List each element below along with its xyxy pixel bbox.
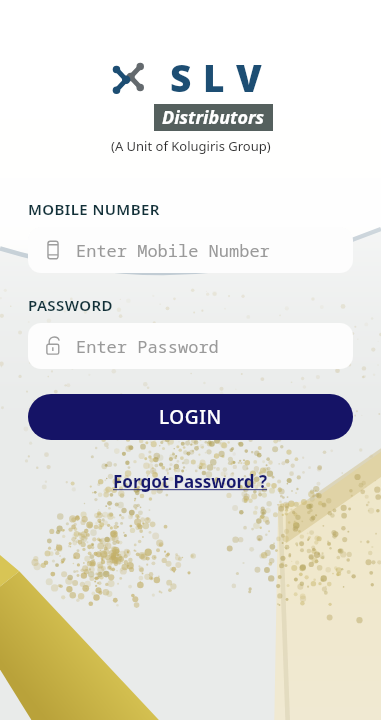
- button[interactable]: LOGIN: [28, 394, 353, 440]
- staticText: Enter Mobile Number: [76, 239, 270, 262]
- staticText: (A Unit of Kolugiris Group): [111, 137, 271, 155]
- button[interactable]: Enter Mobile Number: [28, 227, 353, 273]
- staticText: MOBILE NUMBER: [28, 199, 160, 219]
- staticText: Forgot Password ?: [113, 470, 268, 493]
- button[interactable]: Enter Password: [28, 323, 353, 369]
- staticText: Distributors: [162, 105, 265, 130]
- staticText: LOGIN: [159, 404, 222, 430]
- staticText: S L V: [170, 52, 263, 102]
- staticText: Enter Password: [76, 335, 219, 358]
- button[interactable]: Forgot Password ?: [103, 466, 278, 497]
- staticText: PASSWORD: [28, 295, 113, 315]
